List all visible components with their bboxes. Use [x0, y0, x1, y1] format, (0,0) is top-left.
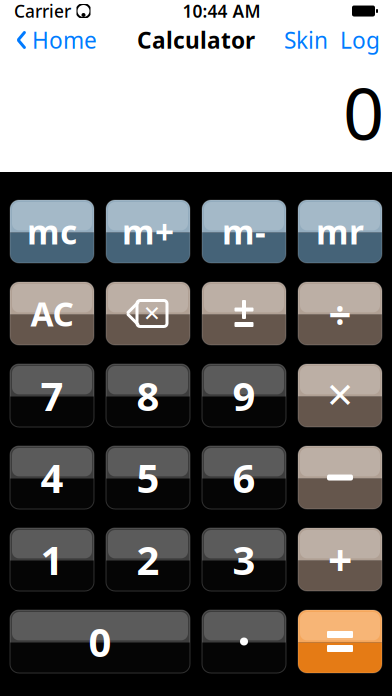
button[interactable]: ÷ [298, 282, 382, 345]
button[interactable]: m+ [106, 200, 190, 263]
staticText: Log [340, 25, 380, 55]
staticText: 9 [232, 369, 255, 422]
button[interactable]: mc [10, 200, 94, 263]
staticText: Calculator [137, 25, 255, 55]
staticText: 5 [136, 451, 159, 504]
button[interactable]: 6 [202, 446, 286, 509]
button[interactable]: 3 [202, 528, 286, 591]
staticText: ✕ [143, 301, 161, 326]
staticText: 2 [136, 533, 159, 586]
button[interactable]: Equals [298, 610, 382, 673]
staticText: 0 [88, 615, 111, 668]
button[interactable]: + [298, 528, 382, 591]
button[interactable]: Decimal point [202, 610, 286, 673]
staticText: ✕ [325, 376, 354, 415]
button[interactable]: 0 [10, 610, 190, 673]
button[interactable]: Home [6, 19, 107, 61]
button[interactable]: AC [10, 282, 94, 345]
button[interactable]: Skin [278, 19, 334, 61]
staticText: 8 [136, 369, 159, 422]
button[interactable]: 4 [10, 446, 94, 509]
staticText: 10:44 AM [182, 0, 260, 22]
staticText: 0 [343, 64, 384, 160]
staticText: Skin [284, 25, 328, 55]
button[interactable]: mr [298, 200, 382, 263]
button[interactable]: 2 [106, 528, 190, 591]
staticText: 7 [40, 369, 63, 422]
button[interactable]: 8 [106, 364, 190, 427]
button[interactable]: Backspace [106, 282, 190, 345]
staticText: + [328, 531, 352, 588]
button[interactable]: 7 [10, 364, 94, 427]
button[interactable]: 9 [202, 364, 286, 427]
button[interactable]: Log [334, 19, 386, 61]
staticText: mc [27, 209, 77, 254]
staticText: 3 [232, 533, 255, 586]
staticText: mr [316, 209, 364, 254]
staticText: m+ [122, 209, 174, 254]
staticText: ÷ [328, 287, 351, 340]
button[interactable]: 5 [106, 446, 190, 509]
staticText [71, 0, 76, 22]
button[interactable]: m- [202, 200, 286, 263]
staticText: Carrier [14, 0, 71, 22]
staticText: AC [30, 291, 73, 336]
button[interactable]: Minus [298, 446, 382, 509]
button[interactable]: 1 [10, 528, 94, 591]
staticText: 6 [232, 451, 255, 504]
staticText: m- [222, 209, 266, 254]
staticText: 4 [40, 451, 63, 504]
button[interactable]: ✕ [298, 364, 382, 427]
button[interactable]: Plus minus [202, 282, 286, 345]
staticText: 1 [40, 533, 63, 586]
staticText: Home [32, 25, 97, 55]
